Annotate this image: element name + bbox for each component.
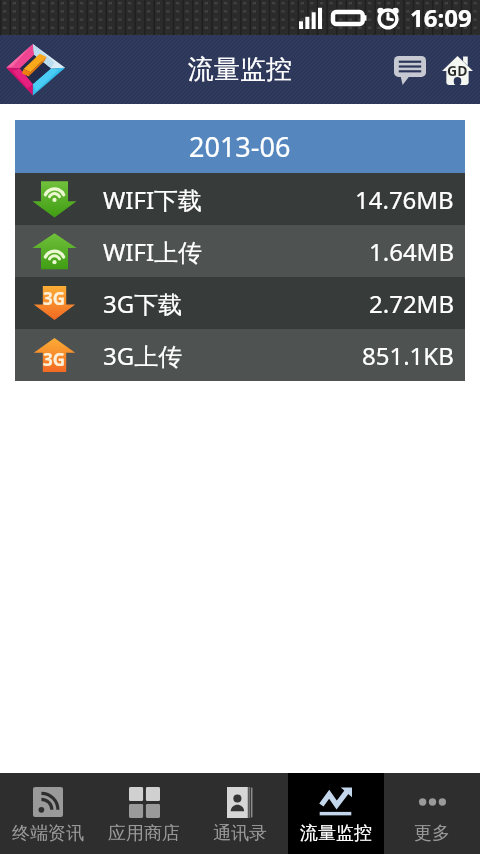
button[interactable]: Home [436, 49, 478, 91]
staticText: 流量监控 [188, 53, 292, 86]
staticText: 通讯录 [213, 822, 267, 845]
staticText: 851.1KB [362, 339, 454, 372]
staticText: 1.64MB [369, 235, 454, 268]
staticText: 应用商店 [108, 822, 180, 845]
staticText: 2013-06 [189, 128, 291, 165]
button[interactable]: 更多 [384, 773, 480, 854]
staticText: 3G下载 [103, 287, 183, 320]
staticText: 3G [43, 348, 66, 371]
staticText: WIFI上传 [103, 235, 203, 268]
button[interactable]: 通讯录 [192, 773, 288, 854]
button[interactable]: 应用商店 [96, 773, 192, 854]
staticText: 终端资讯 [12, 822, 84, 845]
button[interactable]: WIFI下载 [15, 173, 465, 225]
button[interactable]: 3G [15, 277, 465, 329]
button[interactable]: 3G [15, 329, 465, 381]
button[interactable]: WIFI上传 [15, 225, 465, 277]
staticText: 16:09 [410, 1, 472, 34]
button[interactable]: 终端资讯 [0, 773, 96, 854]
staticText: 3G上传 [103, 339, 183, 372]
staticText: 2.72MB [369, 287, 454, 320]
staticText: 14.76MB [355, 183, 454, 216]
button[interactable]: Messages [389, 49, 431, 91]
staticText: 流量监控 [300, 822, 372, 845]
button[interactable]: 流量监控 [288, 773, 384, 854]
staticText: WIFI下载 [103, 183, 203, 216]
staticText: 3G [43, 287, 66, 310]
staticText: GD [447, 61, 468, 80]
staticText: 更多 [414, 822, 450, 845]
